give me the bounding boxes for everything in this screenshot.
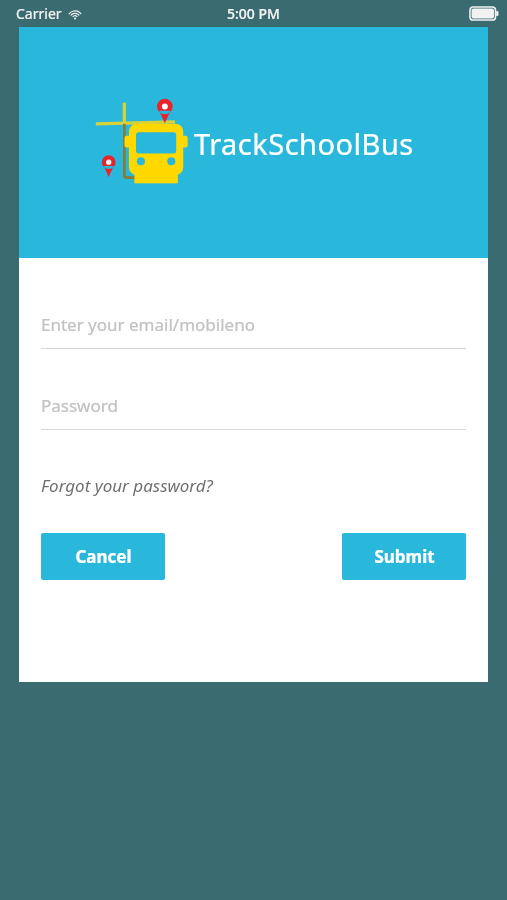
staticText: Submit — [374, 545, 435, 568]
button[interactable]: Password — [41, 394, 466, 430]
staticText: Password — [41, 394, 118, 417]
button[interactable]: Cancel — [41, 533, 165, 580]
staticText: TrackSchoolBus — [194, 124, 414, 163]
staticText: Carrier — [16, 4, 62, 23]
staticText: Forgot your password? — [41, 474, 213, 497]
button[interactable]: Submit — [342, 533, 466, 580]
button[interactable]: Forgot your password? — [41, 470, 213, 501]
staticText: Cancel — [75, 545, 132, 568]
staticText: Enter your email/mobileno — [41, 313, 255, 336]
button[interactable]: Enter your email/mobileno — [41, 313, 466, 349]
staticText: 5:00 PM — [227, 4, 280, 23]
